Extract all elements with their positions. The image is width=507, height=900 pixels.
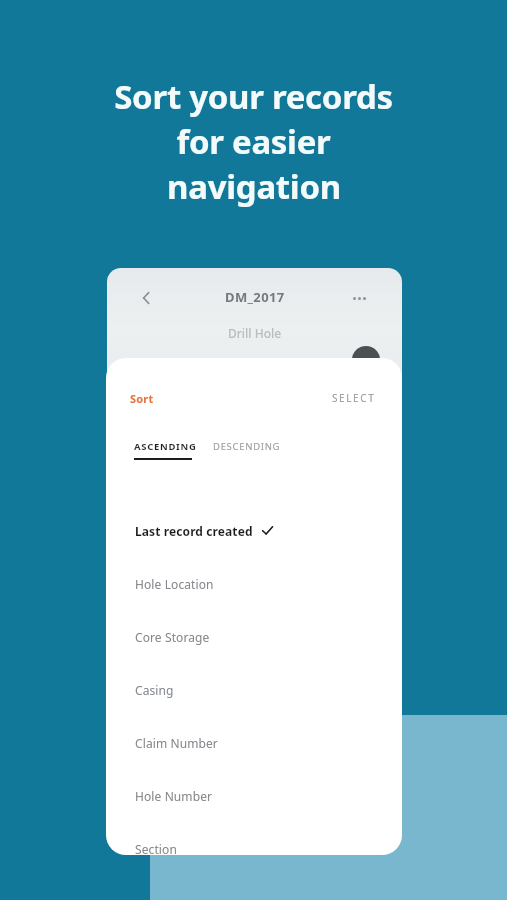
staticText: Hole Location (135, 576, 214, 592)
staticText: Core Storage (135, 629, 210, 645)
button[interactable]: ASCENDING (134, 440, 197, 460)
staticText: Sort your records (114, 74, 393, 119)
staticText: DM_2017 (225, 288, 285, 306)
staticText: SELECT (332, 391, 376, 405)
button[interactable]: More options (346, 286, 372, 310)
button[interactable]: Sort (130, 391, 154, 406)
button[interactable]: Casing (106, 663, 402, 716)
button[interactable]: Hole Location (106, 557, 402, 610)
staticText: Section (135, 841, 177, 855)
button[interactable]: Add (352, 346, 380, 374)
staticText: Sort (130, 391, 154, 406)
button[interactable]: DESCENDING (213, 440, 281, 453)
staticText: Claim Number (135, 735, 218, 751)
staticText: ASCENDING (134, 440, 197, 453)
button[interactable]: Last record created (106, 504, 402, 557)
staticText: DESCENDING (213, 440, 281, 453)
button[interactable]: Hole Number (106, 769, 402, 822)
button[interactable]: Claim Number (106, 716, 402, 769)
staticText: for easier (176, 119, 331, 164)
staticText: Drill Hole (228, 325, 282, 341)
button[interactable]: Back (135, 286, 159, 310)
button[interactable]: SELECT (332, 391, 376, 405)
staticText: Last record created (135, 523, 253, 539)
button[interactable]: Core Storage (106, 610, 402, 663)
staticText: Casing (135, 682, 174, 698)
staticText: Hole Number (135, 788, 213, 804)
staticText: navigation (167, 164, 341, 209)
button[interactable]: Section (106, 822, 402, 855)
